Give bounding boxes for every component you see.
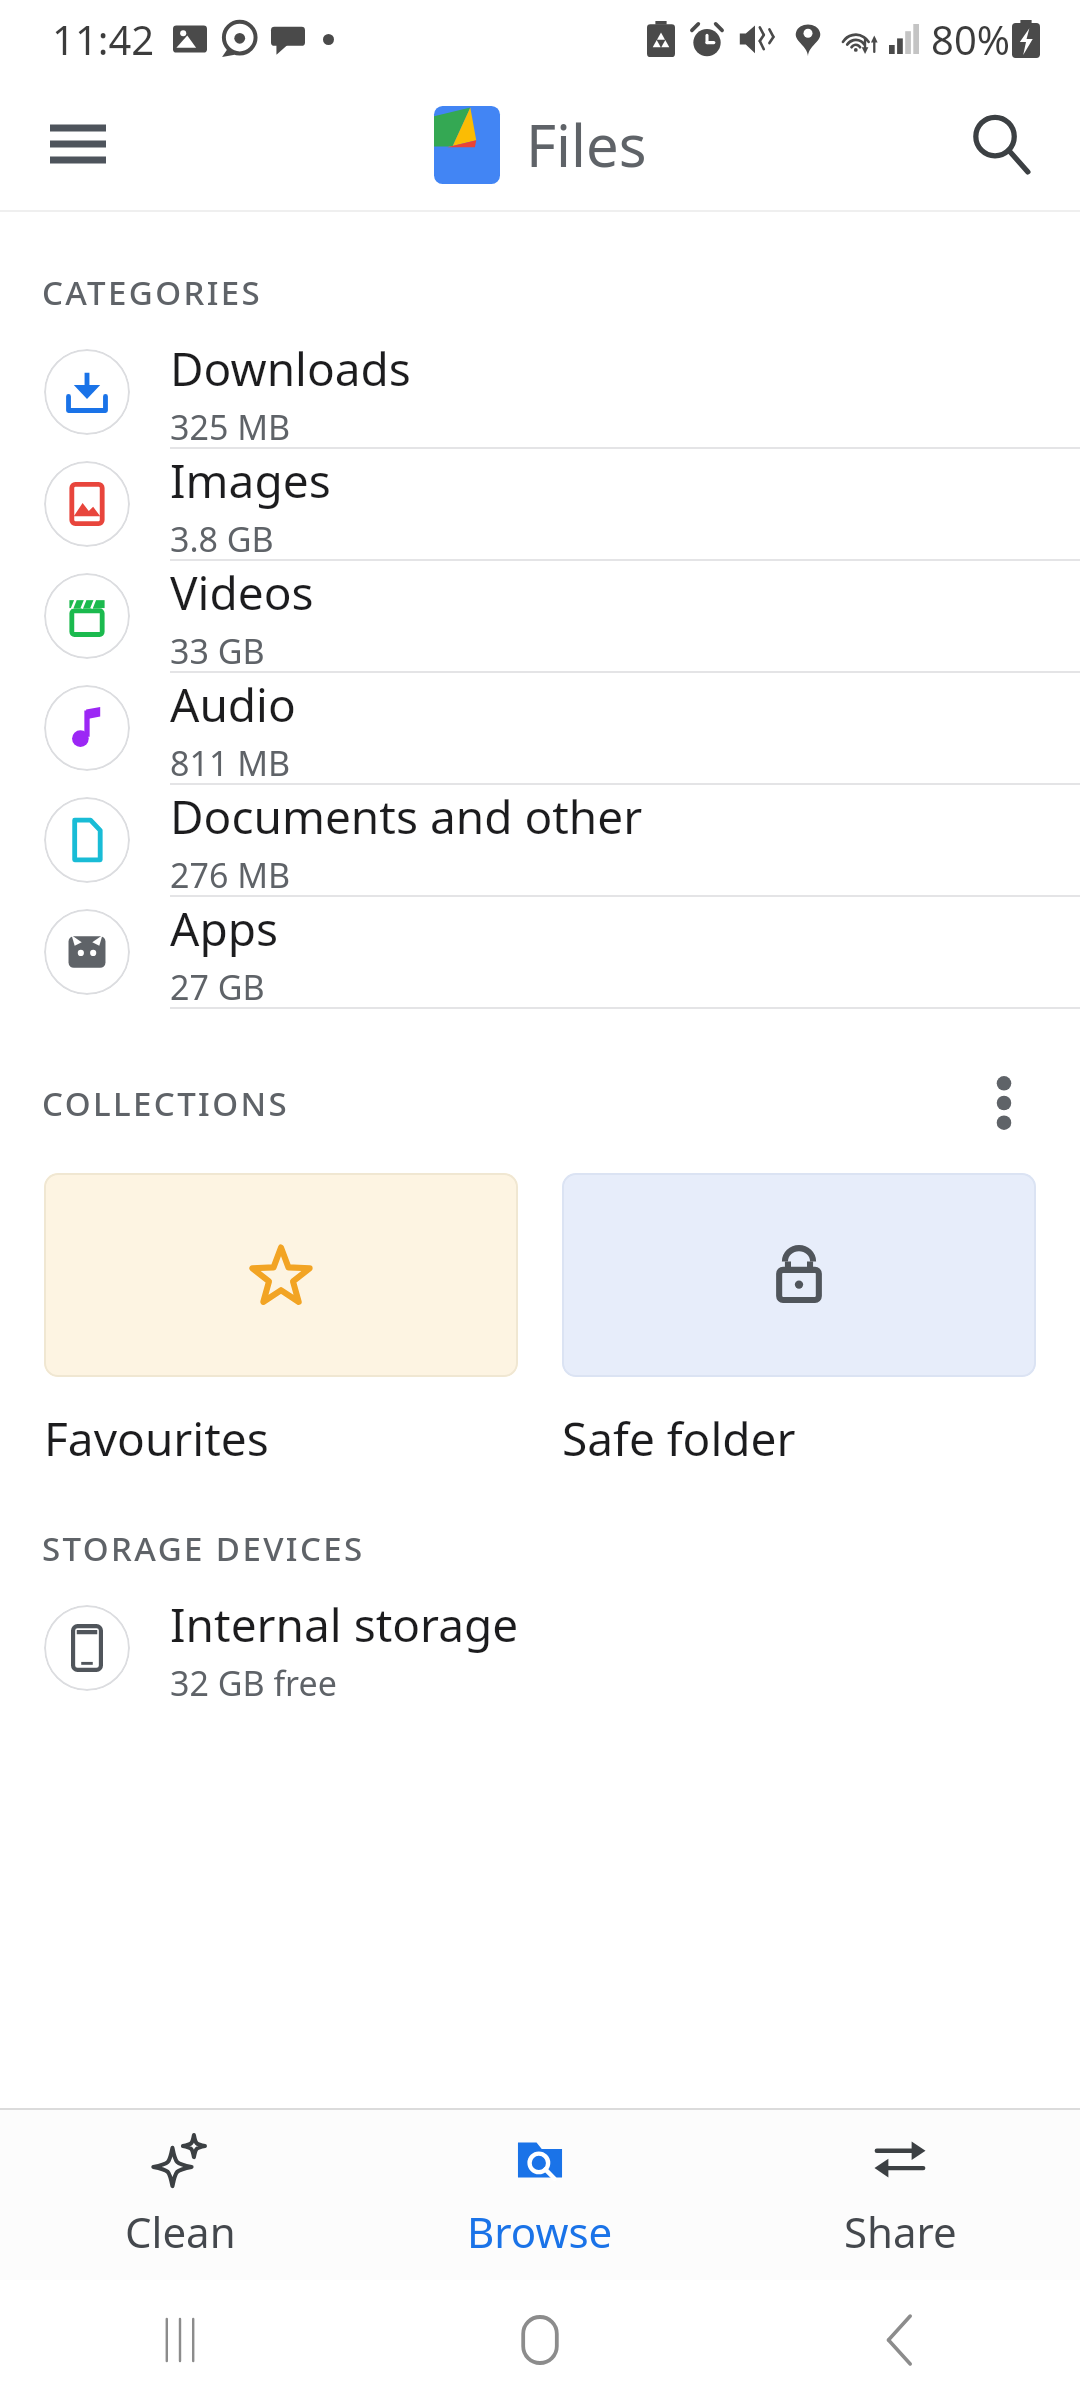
button[interactable]: Share (720, 2110, 1080, 2280)
staticText: Share (844, 2203, 957, 2260)
button[interactable]: Apps (0, 897, 1080, 1007)
staticText: 11:42 (52, 12, 155, 66)
staticText: 32 GB free (170, 1660, 337, 1703)
button[interactable]: Open navigation menu (18, 84, 138, 204)
staticText: Favourites (44, 1407, 269, 1470)
staticText: 811 MB (170, 740, 291, 783)
staticText: Videos (170, 561, 314, 624)
button[interactable]: Favourites (44, 1173, 518, 1377)
staticText: Safe folder (562, 1407, 796, 1470)
staticText: 33 GB (170, 628, 265, 671)
staticText: 27 GB (170, 964, 265, 1007)
staticText: Documents and other (170, 785, 643, 848)
staticText: Files (526, 105, 647, 184)
staticText: COLLECTIONS (42, 1081, 290, 1126)
button[interactable]: Safe folder (562, 1173, 1036, 1377)
button[interactable]: Clean (0, 2110, 360, 2280)
staticText: 325 MB (170, 404, 291, 447)
button[interactable]: More options (956, 1055, 1052, 1151)
button[interactable]: Internal storage (0, 1593, 1080, 1703)
button[interactable]: Downloads (0, 337, 1080, 447)
button[interactable]: Videos (0, 561, 1080, 671)
staticText: Browse (467, 2203, 613, 2260)
staticText: 276 MB (170, 852, 291, 895)
staticText: Clean (125, 2203, 236, 2260)
button[interactable]: Images (0, 449, 1080, 559)
staticText: Apps (170, 897, 279, 960)
button[interactable]: Documents and other (0, 785, 1080, 895)
staticText: CATEGORIES (42, 270, 263, 315)
button[interactable]: Back (720, 2280, 1080, 2400)
staticText: STORAGE DEVICES (42, 1526, 365, 1571)
button[interactable]: Search (940, 84, 1060, 204)
button[interactable]: Browse (360, 2110, 720, 2280)
button[interactable]: Audio (0, 673, 1080, 783)
staticText: 80% (931, 12, 1010, 66)
staticText: 3.8 GB (170, 516, 274, 559)
button[interactable]: Home (360, 2280, 720, 2400)
button[interactable]: Recent apps (0, 2280, 360, 2400)
staticText: Downloads (170, 337, 411, 400)
staticText: Internal storage (170, 1593, 519, 1656)
staticText: Audio (170, 673, 296, 736)
staticText: Images (170, 449, 331, 512)
